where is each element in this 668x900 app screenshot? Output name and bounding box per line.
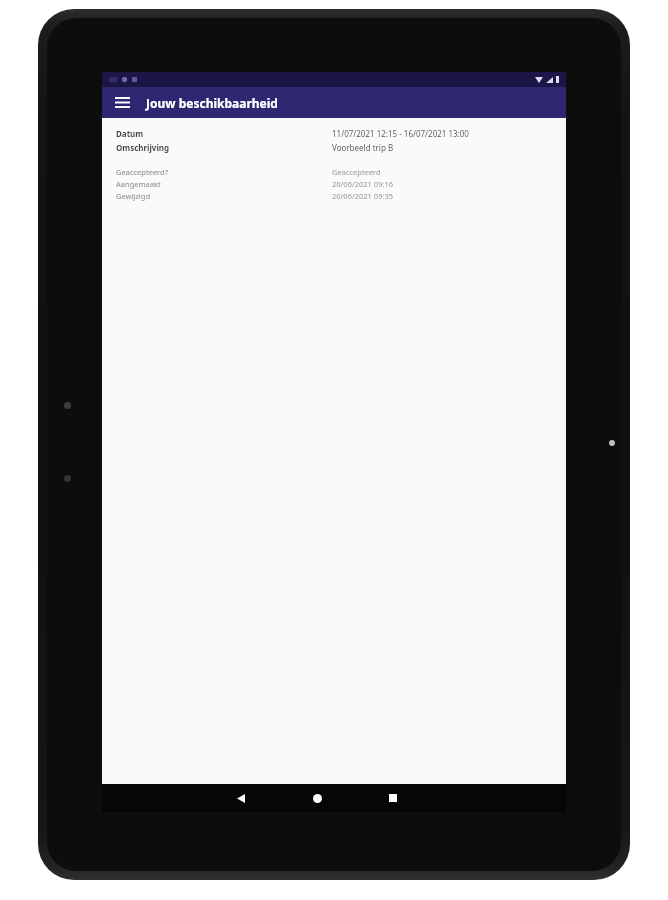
button[interactable]: Back bbox=[218, 784, 264, 812]
button[interactable]: Home bbox=[294, 784, 340, 812]
staticText: Gewijzigd bbox=[116, 191, 150, 201]
staticText: Jouw beschikbaarheid bbox=[146, 95, 278, 111]
staticText: 20/06/2021 09:35 bbox=[332, 191, 394, 201]
staticText: Aangemaakt bbox=[116, 179, 161, 189]
staticText: Omschrijving bbox=[116, 142, 170, 153]
staticText: Datum bbox=[116, 128, 144, 139]
button[interactable]: Open navigation menu bbox=[107, 87, 138, 118]
staticText: 20/06/2021 09:16 bbox=[332, 179, 394, 189]
staticText: Geaccepteerd bbox=[332, 167, 381, 177]
staticText: 11/07/2021 12:15 - 16/07/2021 13:00 bbox=[332, 128, 469, 139]
staticText: Voorbeeld trip B bbox=[332, 142, 394, 153]
staticText: Geaccepteerd? bbox=[116, 167, 168, 177]
button[interactable]: Recent apps bbox=[370, 784, 416, 812]
